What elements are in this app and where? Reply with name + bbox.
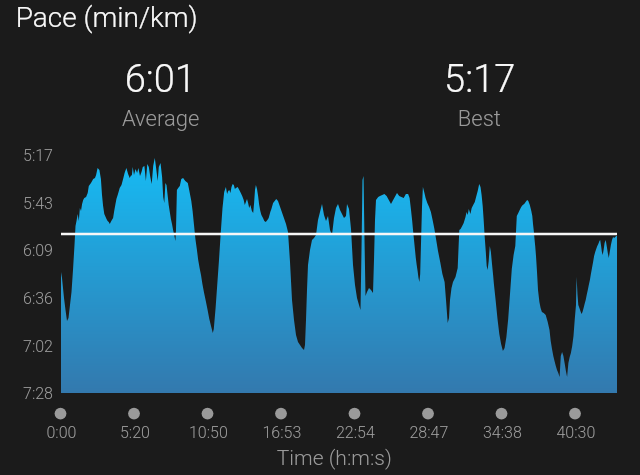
button[interactable] xyxy=(0,0,640,475)
